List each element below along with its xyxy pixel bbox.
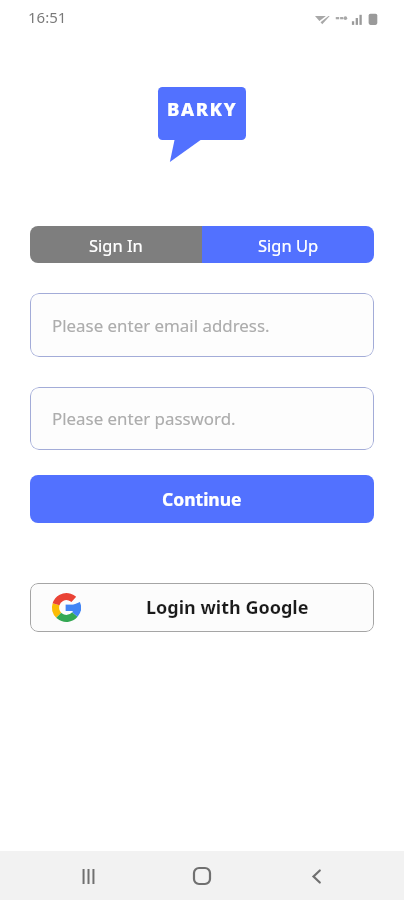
button[interactable]: Back [293,853,339,899]
staticText: Please enter email address. [52,314,270,337]
staticText: Please enter password. [52,407,236,430]
button[interactable]: Continue [30,475,374,523]
button[interactable]: Please enter email address. [30,293,374,357]
button[interactable]: Login with Google [30,583,374,632]
button[interactable]: Please enter password. [30,387,374,450]
button[interactable]: Recents [65,853,111,899]
button[interactable]: Sign In [30,226,202,263]
staticText: Login with Google [146,595,309,620]
button[interactable]: Home [179,853,225,899]
staticText: BARKY [167,96,238,121]
staticText: Sign Up [258,234,319,256]
button[interactable]: Sign Up [202,226,374,263]
staticText: Sign In [89,234,143,256]
staticText: Continue [162,487,242,511]
staticText: 16:51 [28,7,67,27]
